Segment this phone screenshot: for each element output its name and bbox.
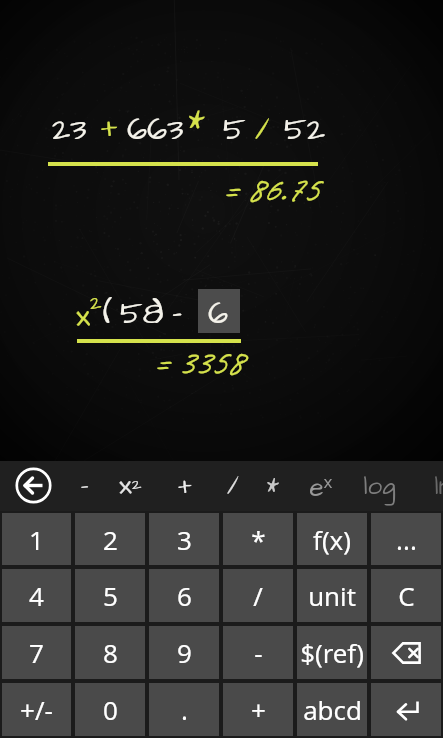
- button[interactable]: +: [159, 461, 211, 511]
- button[interactable]: unit: [297, 569, 367, 622]
- button[interactable]: 9: [149, 626, 219, 679]
- staticText: *: [251, 522, 266, 557]
- staticText: +: [101, 105, 118, 149]
- other: Backspace: [371, 626, 441, 679]
- button[interactable]: ...: [371, 513, 441, 565]
- staticText: 5: [103, 578, 118, 613]
- button[interactable]: C: [371, 569, 441, 622]
- staticText: -: [80, 468, 89, 504]
- button[interactable]: 8: [75, 626, 145, 679]
- button[interactable]: +: [223, 683, 293, 736]
- button[interactable]: +/-: [2, 683, 71, 736]
- staticText: f(x): [313, 522, 351, 557]
- button[interactable]: *: [223, 513, 293, 565]
- button[interactable]: Enter: [371, 683, 441, 736]
- staticText: /: [255, 107, 270, 151]
- staticText: *: [188, 100, 205, 144]
- staticText: 6: [177, 578, 192, 613]
- staticText: 3: [177, 522, 192, 557]
- staticText: $(ref): [300, 635, 364, 670]
- button[interactable]: 7: [2, 626, 71, 679]
- button[interactable]: ln: [417, 461, 443, 511]
- staticText: 663: [127, 107, 184, 151]
- staticText: ): [152, 291, 164, 335]
- button[interactable]: f(x): [297, 513, 367, 565]
- button[interactable]: 5: [75, 569, 145, 622]
- staticText: x²: [119, 467, 142, 505]
- staticText: -: [254, 635, 263, 670]
- button[interactable]: 6: [149, 569, 219, 622]
- button[interactable]: 1: [2, 513, 71, 565]
- staticText: = 86.75: [221, 166, 318, 211]
- staticText: 9: [177, 635, 192, 670]
- button[interactable]: *: [246, 461, 298, 511]
- staticText: abcd: [303, 692, 362, 727]
- button[interactable]: /: [223, 569, 293, 622]
- staticText: 2: [103, 522, 118, 557]
- staticText: 2: [90, 289, 102, 317]
- staticText: 7: [29, 635, 44, 670]
- button[interactable]: eˣ: [295, 461, 347, 511]
- button[interactable]: /: [207, 461, 259, 511]
- staticText: x: [76, 296, 91, 338]
- button[interactable]: Backspace: [371, 626, 441, 679]
- staticText: log: [363, 468, 396, 504]
- staticText: C: [398, 578, 415, 613]
- staticText: ln: [434, 468, 443, 504]
- staticText: .: [181, 692, 188, 727]
- staticText: *: [266, 470, 279, 503]
- staticText: 5: [223, 107, 246, 151]
- button[interactable]: .: [149, 683, 219, 736]
- button[interactable]: 4: [2, 569, 71, 622]
- staticText: /: [227, 468, 239, 504]
- button[interactable]: 2: [75, 513, 145, 565]
- staticText: -: [172, 291, 182, 335]
- button[interactable]: $(ref): [297, 626, 367, 679]
- staticText: +/-: [20, 692, 53, 727]
- staticText: 0: [103, 692, 118, 727]
- staticText: 6: [208, 291, 229, 335]
- button[interactable]: -: [58, 461, 110, 511]
- button[interactable]: 3: [149, 513, 219, 565]
- button[interactable]: -: [223, 626, 293, 679]
- staticText: 52: [284, 107, 325, 151]
- button[interactable]: 0: [75, 683, 145, 736]
- button[interactable]: log: [353, 461, 405, 511]
- staticText: +: [251, 692, 266, 727]
- staticText: ...: [396, 522, 417, 557]
- staticText: eˣ: [309, 467, 333, 505]
- staticText: 1: [29, 522, 44, 557]
- staticText: (: [103, 291, 113, 335]
- staticText: +: [178, 468, 192, 504]
- staticText: unit: [308, 578, 356, 613]
- button[interactable]: x²: [104, 461, 156, 511]
- staticText: 58: [120, 291, 164, 335]
- staticText: 8: [103, 635, 118, 670]
- other: Enter: [371, 683, 441, 736]
- staticText: = 3358: [152, 339, 242, 384]
- button[interactable]: abcd: [297, 683, 367, 736]
- staticText: 23: [52, 107, 87, 151]
- staticText: 4: [29, 578, 44, 613]
- staticText: /: [253, 578, 263, 613]
- button[interactable]: Back: [15, 467, 52, 504]
